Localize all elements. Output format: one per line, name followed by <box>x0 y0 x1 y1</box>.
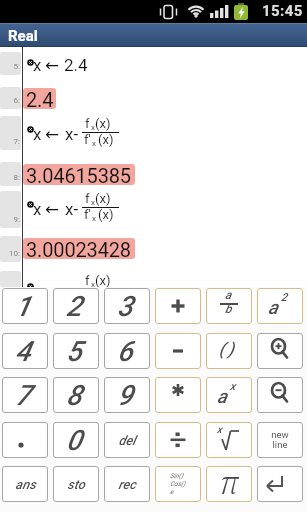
staticText: (x) <box>95 191 111 206</box>
staticText: 5: <box>13 62 20 71</box>
staticText: f <box>85 191 90 206</box>
button[interactable]: a <box>257 288 303 324</box>
staticText: a <box>225 288 232 302</box>
button[interactable] <box>257 333 303 369</box>
staticText: ( <box>219 339 225 359</box>
staticText: (x) <box>95 273 111 288</box>
staticText: f' <box>84 289 91 304</box>
staticText: Real <box>8 27 38 45</box>
staticText: sto <box>67 477 85 492</box>
staticText: ← <box>45 199 60 219</box>
staticText: x <box>91 123 95 132</box>
button[interactable]: 1 <box>2 288 48 324</box>
button[interactable]: ans <box>2 466 48 502</box>
staticText: new line <box>271 429 289 451</box>
button[interactable]: 6 <box>104 333 150 369</box>
staticText: π <box>220 462 239 498</box>
staticText: ← <box>45 124 60 144</box>
staticText: 2.4 <box>64 55 88 75</box>
staticText: 2.4 <box>26 88 54 109</box>
staticText: ) <box>228 339 234 359</box>
staticText: x <box>33 199 42 219</box>
button[interactable]: 2.4 <box>23 88 56 109</box>
button[interactable]: ( <box>206 333 252 369</box>
button[interactable]: 9 <box>104 377 150 413</box>
staticText: x <box>33 124 42 144</box>
staticText: (x) <box>95 116 111 131</box>
staticText: 6 <box>117 335 133 368</box>
staticText: x <box>92 139 96 148</box>
staticText: 3 <box>117 290 133 323</box>
staticText: 10: <box>9 249 20 258</box>
staticText: x <box>91 198 95 207</box>
staticText: x- <box>65 124 79 144</box>
staticText: x <box>230 380 236 393</box>
staticText: 7: <box>13 137 20 146</box>
button[interactable]: 3 <box>104 288 150 324</box>
button[interactable]: 2 <box>53 288 99 324</box>
staticText: 15:45 <box>262 2 303 20</box>
staticText: 9 <box>117 379 133 412</box>
button[interactable]: 3.00023428 <box>23 238 135 259</box>
staticText: 2 <box>66 290 82 323</box>
staticText: ← <box>45 281 60 301</box>
button[interactable] <box>257 377 303 413</box>
staticText: 6: <box>13 96 20 105</box>
staticText: a <box>268 296 278 318</box>
staticText: 8: <box>13 173 20 182</box>
button[interactable]: Sin() Cos() e <box>155 466 201 502</box>
staticText: (x) <box>98 207 114 222</box>
button[interactable]: 7 <box>2 377 48 413</box>
button[interactable] <box>2 422 48 458</box>
staticText: x- <box>65 281 79 301</box>
staticText: 3.04615385 <box>26 164 131 185</box>
staticText: f <box>85 273 90 288</box>
button[interactable] <box>155 333 201 369</box>
staticText: ← <box>45 55 60 75</box>
button[interactable]: sto <box>53 466 99 502</box>
staticText: (x) <box>98 289 114 304</box>
button[interactable]: 5 <box>53 333 99 369</box>
staticText: b <box>225 302 232 316</box>
button[interactable]: 0 <box>53 422 99 458</box>
button[interactable]: del <box>104 422 150 458</box>
staticText: 8 <box>66 379 82 412</box>
staticText: 1 <box>15 290 31 323</box>
button[interactable]: rec <box>104 466 150 502</box>
button[interactable]: 4 <box>2 333 48 369</box>
button[interactable]: a <box>206 288 252 324</box>
staticText: 5 <box>66 335 82 368</box>
staticText: x- <box>65 199 79 219</box>
button[interactable]: new line <box>257 422 303 458</box>
staticText: rec <box>118 477 136 492</box>
button[interactable]: π <box>206 466 252 502</box>
staticText: 3.00023428 <box>26 238 131 259</box>
staticText: 2 <box>281 291 288 304</box>
staticText: x <box>33 55 42 75</box>
staticText: 0 <box>66 424 82 457</box>
button[interactable]: x <box>206 422 252 458</box>
button[interactable] <box>155 422 201 458</box>
staticText: del <box>118 433 136 448</box>
staticText: (x) <box>98 132 114 147</box>
button[interactable]: 8 <box>53 377 99 413</box>
staticText: a <box>217 385 227 407</box>
staticText: 4 <box>15 335 31 368</box>
button[interactable] <box>155 288 201 324</box>
button[interactable]: 3.04615385 <box>23 164 135 185</box>
staticText: Sin() Cos() e <box>170 472 186 496</box>
staticText: f <box>85 116 90 131</box>
staticText: x <box>33 281 42 301</box>
staticText: ans <box>15 477 36 492</box>
staticText: 7 <box>15 379 31 412</box>
staticText: f' <box>84 207 91 222</box>
staticText: f' <box>84 132 91 147</box>
button[interactable]: a <box>206 377 252 413</box>
staticText: x <box>217 424 222 436</box>
button[interactable] <box>257 466 303 502</box>
staticText: 9: <box>13 215 20 224</box>
staticText: x <box>92 214 96 223</box>
button[interactable] <box>155 377 201 413</box>
staticText: x <box>91 280 95 289</box>
